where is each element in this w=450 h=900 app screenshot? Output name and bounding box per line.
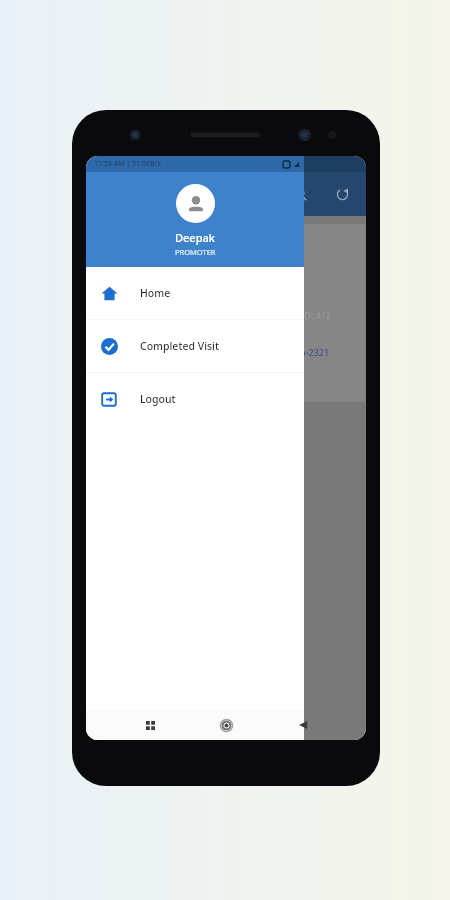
staticText: Deepak	[175, 230, 215, 245]
staticText: Visit ID : 412	[284, 310, 331, 321]
button[interactable]: Home	[86, 267, 304, 319]
staticText: Home	[140, 286, 171, 300]
staticText: Logout	[140, 392, 176, 406]
staticText: Shop-2321	[284, 346, 330, 358]
button[interactable]: Completed Visit	[86, 320, 304, 372]
button[interactable]: Recents	[137, 712, 163, 738]
staticText: PROMOTER	[175, 247, 216, 257]
button[interactable]: Refresh	[326, 178, 358, 210]
button[interactable]: Search	[284, 178, 316, 210]
staticText: Completed Visit	[140, 339, 219, 353]
staticText: 11:53 AM | 51.0KB/s	[94, 159, 161, 169]
button[interactable]: Back	[290, 712, 316, 738]
button[interactable]: Home	[213, 712, 239, 738]
button[interactable]: Logout	[86, 373, 304, 425]
